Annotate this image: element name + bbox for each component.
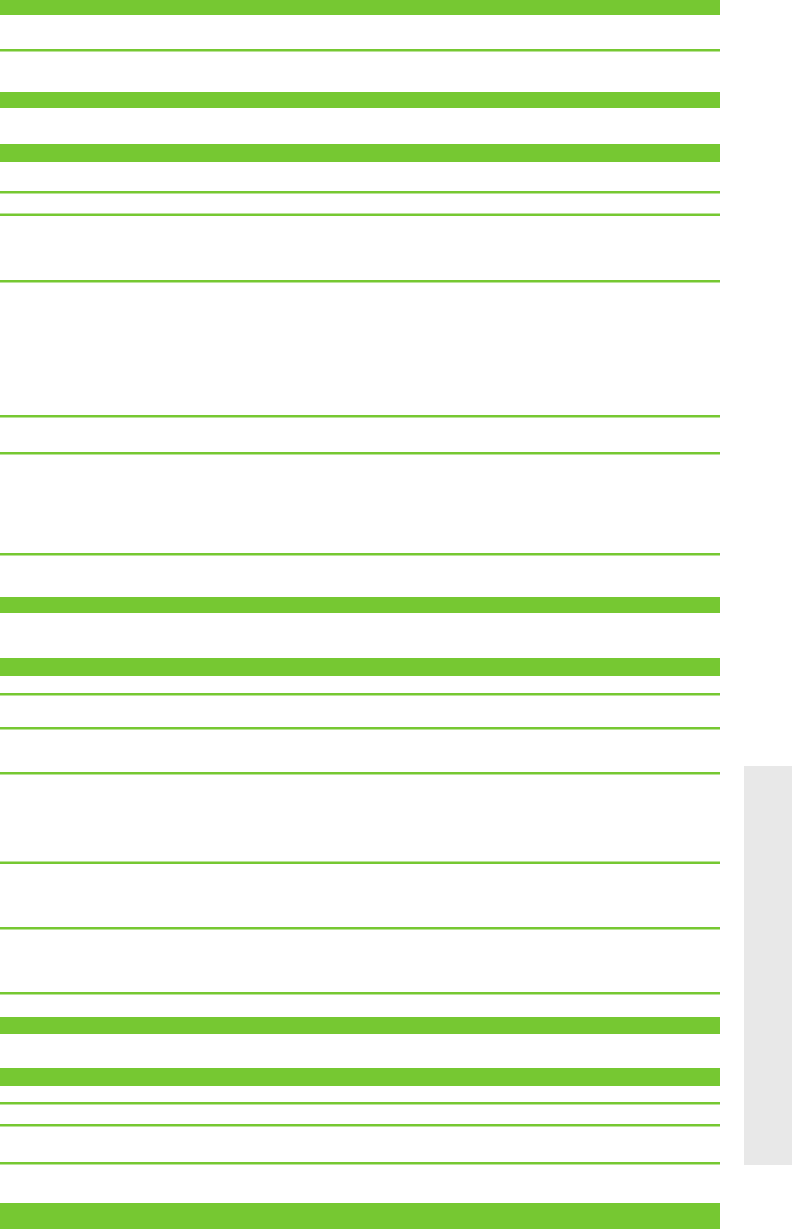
button[interactable]: Document page xyxy=(0,0,792,1229)
